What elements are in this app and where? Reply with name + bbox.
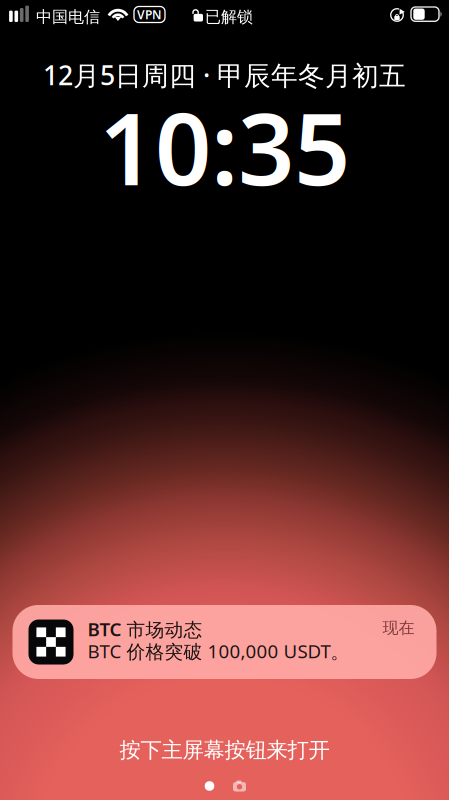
staticText: 已解锁 [205,7,253,27]
staticText: 中国电信 [36,7,100,27]
button[interactable]: BTC 市场动态 [12,605,436,679]
staticText: BTC 价格突破 100,000 USDT。 [87,638,349,663]
staticText: VPN [137,6,162,22]
button[interactable]: Flashlight [198,775,220,797]
staticText: 现在 [382,618,414,638]
staticText: 10:35 [99,81,350,212]
staticText: 按下主屏幕按钮来打开 [119,737,329,763]
staticText: BTC 市场动态 [87,617,202,641]
button[interactable]: Camera [228,775,250,797]
staticText: 12月5日周四 · 甲辰年冬月初五 [43,57,406,93]
